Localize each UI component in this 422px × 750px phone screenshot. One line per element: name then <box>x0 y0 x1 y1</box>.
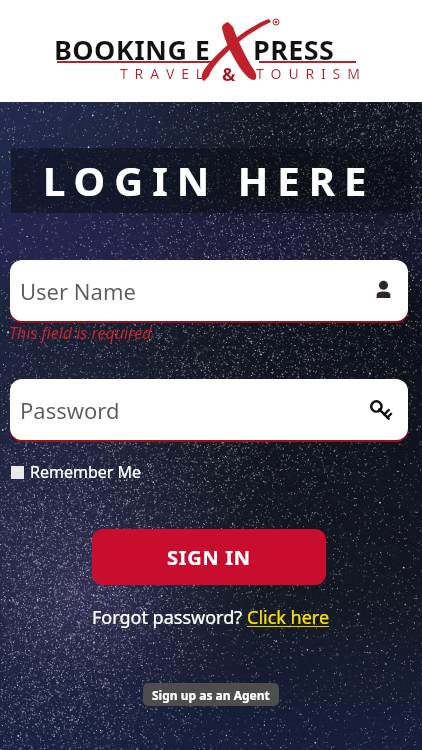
staticText: This field is required <box>9 322 152 344</box>
button[interactable]: Password <box>10 379 408 442</box>
staticText: PRESS <box>253 31 335 68</box>
staticText: BOOKING E <box>54 31 211 68</box>
button[interactable]: Click here <box>247 605 330 630</box>
button[interactable]: User Name <box>10 260 408 323</box>
button[interactable]: SIGN IN <box>92 529 326 585</box>
staticText: T O U R I S M <box>256 64 362 83</box>
button[interactable]: Remember Me <box>11 461 142 483</box>
staticText: Sign up as an Agent <box>152 687 270 703</box>
staticText: LOGIN HERE <box>43 153 376 207</box>
button[interactable]: Sign up as an Agent <box>143 683 279 706</box>
staticText: Remember Me <box>30 461 142 483</box>
staticText: & <box>222 62 236 87</box>
staticText: T R A V E L <box>120 64 205 83</box>
staticText: SIGN IN <box>167 544 251 571</box>
staticText: User Name <box>20 276 136 306</box>
staticText: Password <box>20 395 120 425</box>
other: User name <box>373 280 394 301</box>
other: Password <box>370 398 394 422</box>
staticText: Forgot password? <box>92 605 247 630</box>
